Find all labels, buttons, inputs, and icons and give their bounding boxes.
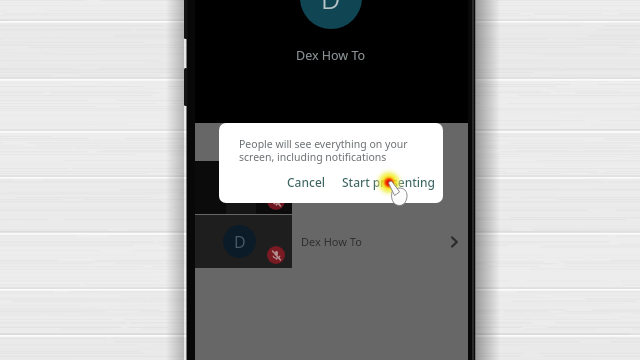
staticText: D [321,0,341,17]
staticText: D [234,231,246,253]
staticText: Cancel [287,174,326,190]
button[interactable]: D [195,215,468,268]
button[interactable]: Participant options [442,230,466,254]
staticText: Start presenting [342,174,436,190]
button[interactable]: Cancel [279,169,334,195]
staticText: Dex How To [296,47,366,64]
staticText: Dex How To [301,234,362,249]
button[interactable]: Start presenting [334,169,443,195]
staticText: People will see everything on your scree… [239,137,408,164]
